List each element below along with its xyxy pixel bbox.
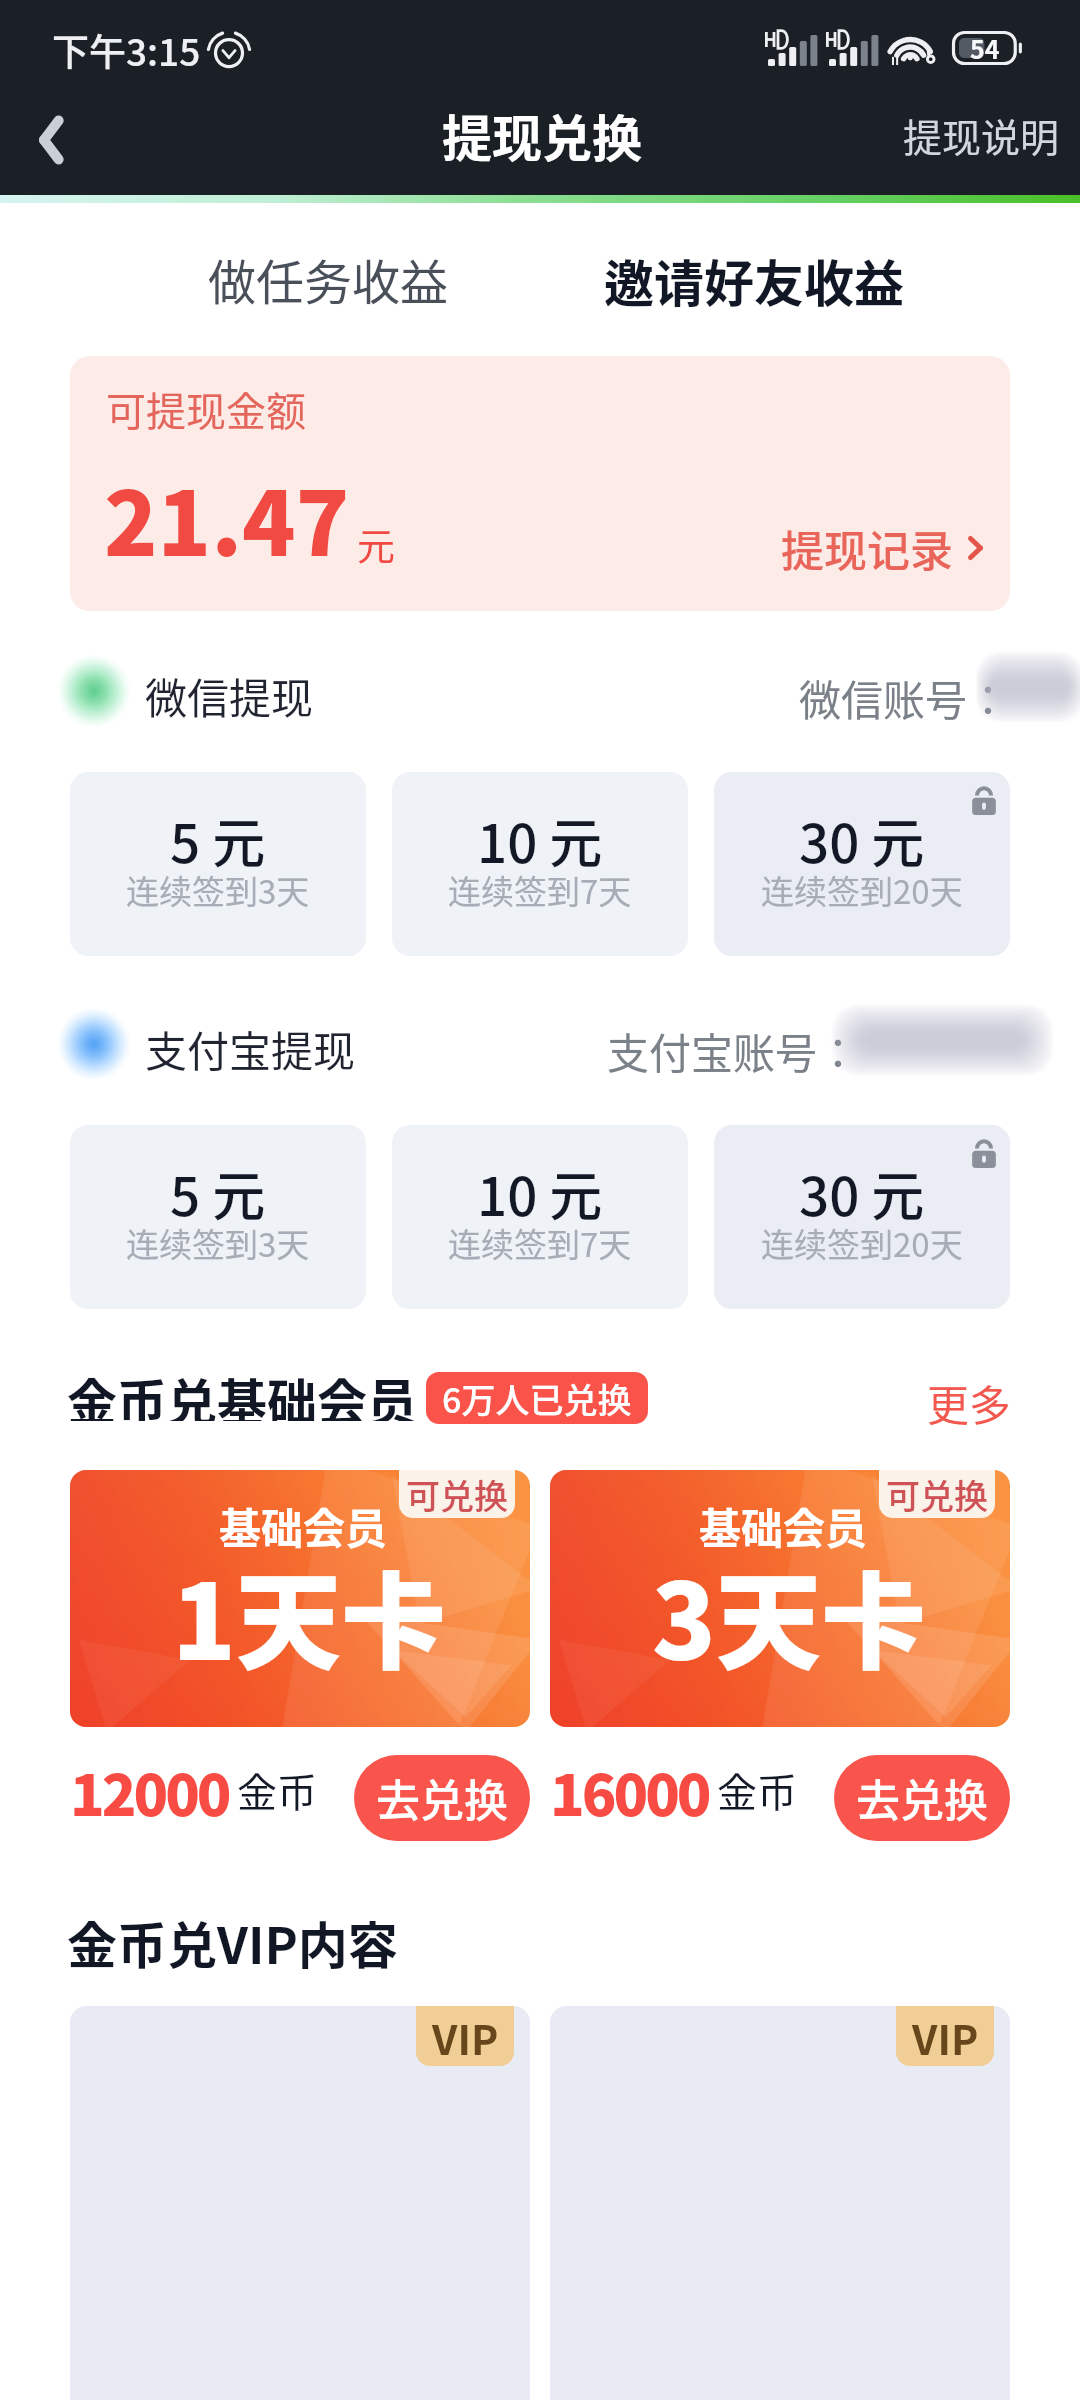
staticText: 连续签到3天	[126, 1219, 310, 1267]
staticText: 支付宝账号：	[607, 1020, 860, 1081]
button[interactable]: 去兑换	[354, 1755, 530, 1841]
staticText: 微信账号：	[799, 667, 1010, 728]
staticText: 可兑换	[406, 1470, 508, 1518]
staticText: 30 元	[799, 1155, 925, 1232]
staticText: 金币兑VIP内容	[67, 1906, 398, 1978]
button[interactable]: 可提现金额	[70, 356, 1010, 611]
staticText: 12000	[70, 1750, 229, 1833]
staticText: 基础会员	[219, 1495, 388, 1556]
button[interactable]: 去兑换	[834, 1755, 1010, 1841]
staticText: VIP	[912, 2007, 979, 2066]
button[interactable]: 10 元	[392, 772, 688, 956]
staticText: 元	[357, 516, 396, 571]
staticText: 可兑换	[886, 1470, 988, 1518]
staticText: 21.47	[104, 454, 350, 581]
staticText: 金币	[717, 1761, 797, 1819]
staticText: 30 元	[799, 802, 925, 879]
button[interactable]: 提现说明	[903, 96, 1080, 195]
staticText: 去兑换	[856, 1766, 988, 1830]
button[interactable]: 更多	[927, 1372, 1012, 1430]
button[interactable]: 5 元	[70, 772, 366, 956]
button[interactable]: 邀请好友收益	[604, 244, 904, 316]
staticText: 连续签到20天	[761, 1219, 963, 1267]
staticText: 提现说明	[903, 107, 1060, 163]
staticText: 54	[970, 30, 1000, 66]
staticText: 邀请好友收益	[604, 244, 904, 316]
staticText: 10 元	[477, 1155, 603, 1232]
staticText: 去兑换	[376, 1766, 508, 1830]
button[interactable]: VIP	[70, 2006, 530, 2400]
staticText: 1天卡	[172, 1538, 446, 1690]
staticText: 下午3:15	[52, 23, 201, 77]
staticText: 提现记录	[781, 517, 953, 579]
staticText: 支付宝提现	[145, 1018, 356, 1079]
button[interactable]: 10 元	[392, 1125, 688, 1309]
staticText: 更多	[927, 1372, 1012, 1430]
staticText: 连续签到20天	[761, 866, 963, 914]
staticText: 提现兑换	[442, 99, 642, 171]
staticText: 5 元	[170, 1155, 266, 1232]
staticText: 连续签到7天	[448, 866, 632, 914]
button[interactable]: 做任务收益	[208, 244, 449, 314]
staticText: 10 元	[477, 802, 603, 879]
staticText: 做任务收益	[208, 244, 449, 314]
button[interactable]: 30 元	[714, 1125, 1010, 1309]
button[interactable]: 5 元	[70, 1125, 366, 1309]
button[interactable]: 基础会员	[70, 1470, 530, 1727]
staticText: 6万人已兑换	[442, 1374, 632, 1423]
button[interactable]: 6万人已兑换	[426, 1372, 648, 1424]
button[interactable]: 提现记录	[781, 517, 982, 579]
staticText: VIP	[432, 2007, 499, 2066]
button[interactable]: Back	[0, 96, 108, 195]
staticText: 基础会员	[699, 1495, 868, 1556]
button[interactable]: 基础会员	[550, 1470, 1010, 1727]
staticText: 金币兑基础会员	[67, 1363, 417, 1421]
button[interactable]: 30 元	[714, 772, 1010, 956]
staticText: 金币	[237, 1761, 317, 1819]
staticText: 可提现金额	[106, 380, 306, 438]
staticText: 连续签到3天	[126, 866, 310, 914]
button[interactable]: VIP	[550, 2006, 1010, 2400]
staticText: 16000	[550, 1750, 709, 1833]
staticText: 3天卡	[652, 1538, 926, 1690]
staticText: 5 元	[170, 802, 266, 879]
staticText: 连续签到7天	[448, 1219, 632, 1267]
staticText: 微信提现	[145, 665, 314, 726]
